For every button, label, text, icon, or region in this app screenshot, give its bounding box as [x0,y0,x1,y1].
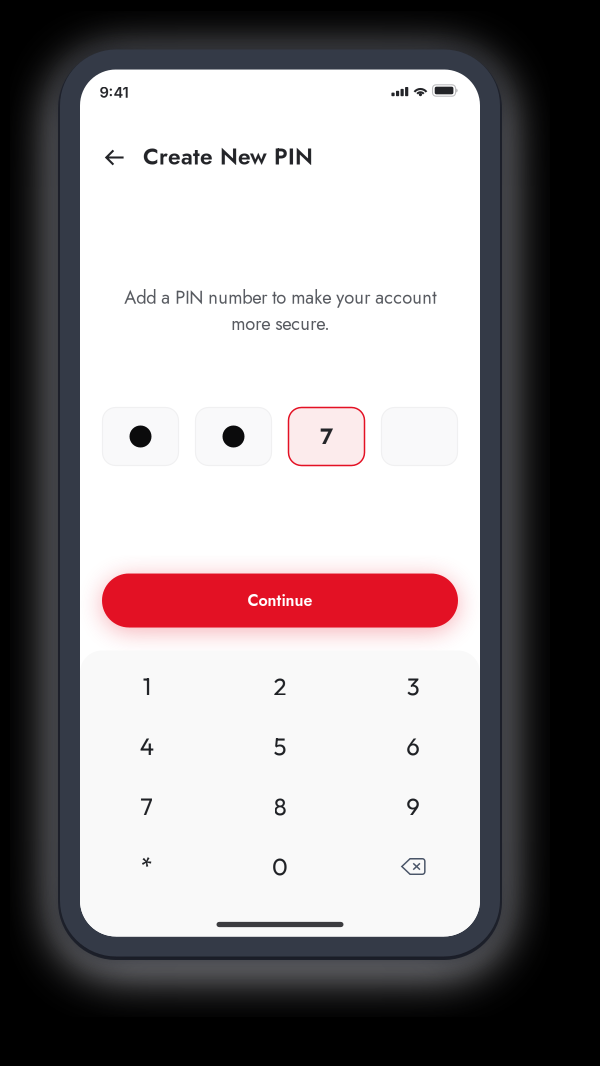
staticText: 5 [273,731,286,762]
staticText: 1 [143,671,151,702]
button[interactable]: 6 [347,716,480,776]
staticText: 7 [320,420,333,453]
button[interactable]: Delete [347,836,480,896]
staticText: * [141,851,153,882]
staticText: 9 [406,791,420,822]
staticText: 8 [273,791,286,822]
staticText: 2 [273,671,286,702]
button[interactable]: Continue [102,573,458,627]
button[interactable]: * [80,836,213,896]
staticText: Create New PIN [143,140,313,173]
button[interactable]: 1 [80,656,213,716]
staticText: 7 [140,791,153,822]
button[interactable]: 3 [347,656,480,716]
staticText: 3 [407,671,420,702]
button[interactable]: 7 [80,776,213,836]
button[interactable]: 5 [213,716,347,776]
staticText: Continue [247,589,312,612]
button[interactable]: 8 [213,776,347,836]
staticText: 9:41 [99,84,128,101]
staticText: 4 [140,731,154,762]
staticText: Add a PIN number to make your account mo… [124,284,436,337]
button[interactable]: 4 [80,716,213,776]
staticText: 6 [406,731,420,762]
button[interactable]: 9 [347,776,480,836]
button[interactable]: 0 [213,836,347,896]
staticText: 0 [272,851,288,882]
button[interactable]: Back [95,137,135,177]
button[interactable]: 2 [213,656,347,716]
